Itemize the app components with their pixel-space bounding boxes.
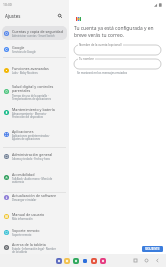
staticText: Idioma y teclado · Fecha y hora [12, 157, 50, 161]
staticText: Ajustes [5, 13, 21, 19]
staticText: Accesibilidad [12, 172, 35, 177]
button[interactable]: Inicio [141, 255, 152, 266]
staticText: Tu cuenta ya está configurada y en breve… [74, 25, 154, 39]
staticText: Cuentas y copia de seguridad [12, 29, 63, 34]
button[interactable]: Atrás [152, 255, 163, 266]
button[interactable]: Aplicación [91, 258, 97, 264]
staticText: Almacenamiento · Memoria · Protección de… [12, 112, 48, 118]
staticText: Soporte remoto [12, 233, 32, 237]
staticText: Tiempo de uso de la pantalla · Temporiza… [12, 94, 51, 100]
button[interactable]: Tu nombre [74, 57, 161, 71]
staticText: Acerca de la tableta [12, 242, 46, 247]
staticText: Descargar e instalar [12, 198, 37, 202]
staticText: Google [12, 45, 25, 50]
staticText: Actualización de software [12, 193, 57, 198]
button[interactable]: Buscar [56, 12, 64, 20]
staticText: Salud digital y controles parentales [12, 84, 54, 94]
button[interactable]: Nombre de la cuenta (opcional) [74, 43, 161, 57]
staticText: Más información [12, 217, 33, 221]
button[interactable]: Actualización de software [2, 188, 67, 207]
button[interactable]: Aplicación [100, 258, 106, 264]
staticText: Labs · Bixby Routines [12, 71, 38, 75]
button[interactable]: Aplicación [73, 258, 79, 264]
staticText: TalkBack · Audio mono · Menú de asistenc… [12, 177, 53, 183]
staticText: Soporte remoto [12, 228, 40, 233]
button[interactable]: SIGUIENTE [142, 246, 163, 252]
button[interactable]: Recientes [130, 255, 141, 266]
button[interactable]: Salud digital y controles parentales [2, 81, 67, 102]
staticText: SIGUIENTE [145, 247, 160, 251]
staticText: Nombre de la cuenta (opcional) [79, 43, 122, 47]
button[interactable]: Aplicaciones [2, 123, 67, 145]
button[interactable]: Administración general [2, 145, 67, 167]
button[interactable]: Aplicación [83, 259, 87, 263]
button[interactable]: Funciones avanzadas [2, 59, 67, 81]
staticText: Aplicaciones [12, 129, 34, 134]
staticText: Administración general [12, 152, 53, 157]
button[interactable]: Accesibilidad [2, 166, 67, 188]
button[interactable]: Acerca de la tableta [2, 240, 67, 255]
button[interactable]: Cuentas y copia de seguridad [2, 26, 67, 40]
staticText: Funciones avanzadas [12, 66, 49, 71]
staticText: Tu nombre [79, 57, 94, 61]
staticText: Servicios de Google [12, 50, 36, 54]
button[interactable]: Google [2, 40, 67, 59]
staticText: Estado · Información legal · Nombre de l… [12, 247, 56, 253]
staticText: 10:30 [3, 2, 12, 7]
button[interactable]: Aplicación [64, 258, 70, 264]
button[interactable]: Aplicación [56, 258, 62, 264]
staticText: Se mostrará en los mensajes enviados [77, 71, 128, 75]
staticText: Mantenimiento y batería [12, 107, 55, 112]
staticText: Manual de usuario [12, 212, 45, 217]
button[interactable]: Mantenimiento y batería [2, 102, 67, 123]
staticText: Administrar cuentas · Smart Switch [12, 34, 55, 38]
button[interactable]: Manual de usuario [2, 208, 67, 224]
staticText: Aplicaciones predeterminadas · Ajustes d… [12, 134, 51, 140]
button[interactable]: Soporte remoto [2, 224, 67, 240]
